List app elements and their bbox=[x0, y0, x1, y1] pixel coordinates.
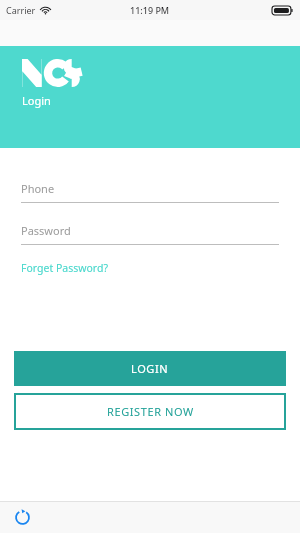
button[interactable]: Phone bbox=[21, 181, 279, 203]
staticText: Password bbox=[21, 223, 71, 238]
staticText: REGISTER NOW bbox=[107, 404, 194, 419]
button[interactable]: REGISTER NOW bbox=[14, 393, 286, 430]
staticText: Forget Password? bbox=[21, 261, 108, 275]
button[interactable]: LOGIN bbox=[14, 351, 286, 386]
staticText: LOGIN bbox=[131, 361, 169, 376]
button[interactable]: Forget Password? bbox=[21, 259, 108, 277]
staticText: Phone bbox=[21, 181, 55, 196]
button[interactable]: Reload bbox=[11, 506, 33, 528]
staticText: 11:19 PM bbox=[130, 4, 170, 16]
staticText: Carrier bbox=[6, 4, 36, 16]
staticText: Login bbox=[22, 93, 51, 108]
button[interactable]: Password bbox=[21, 223, 279, 245]
